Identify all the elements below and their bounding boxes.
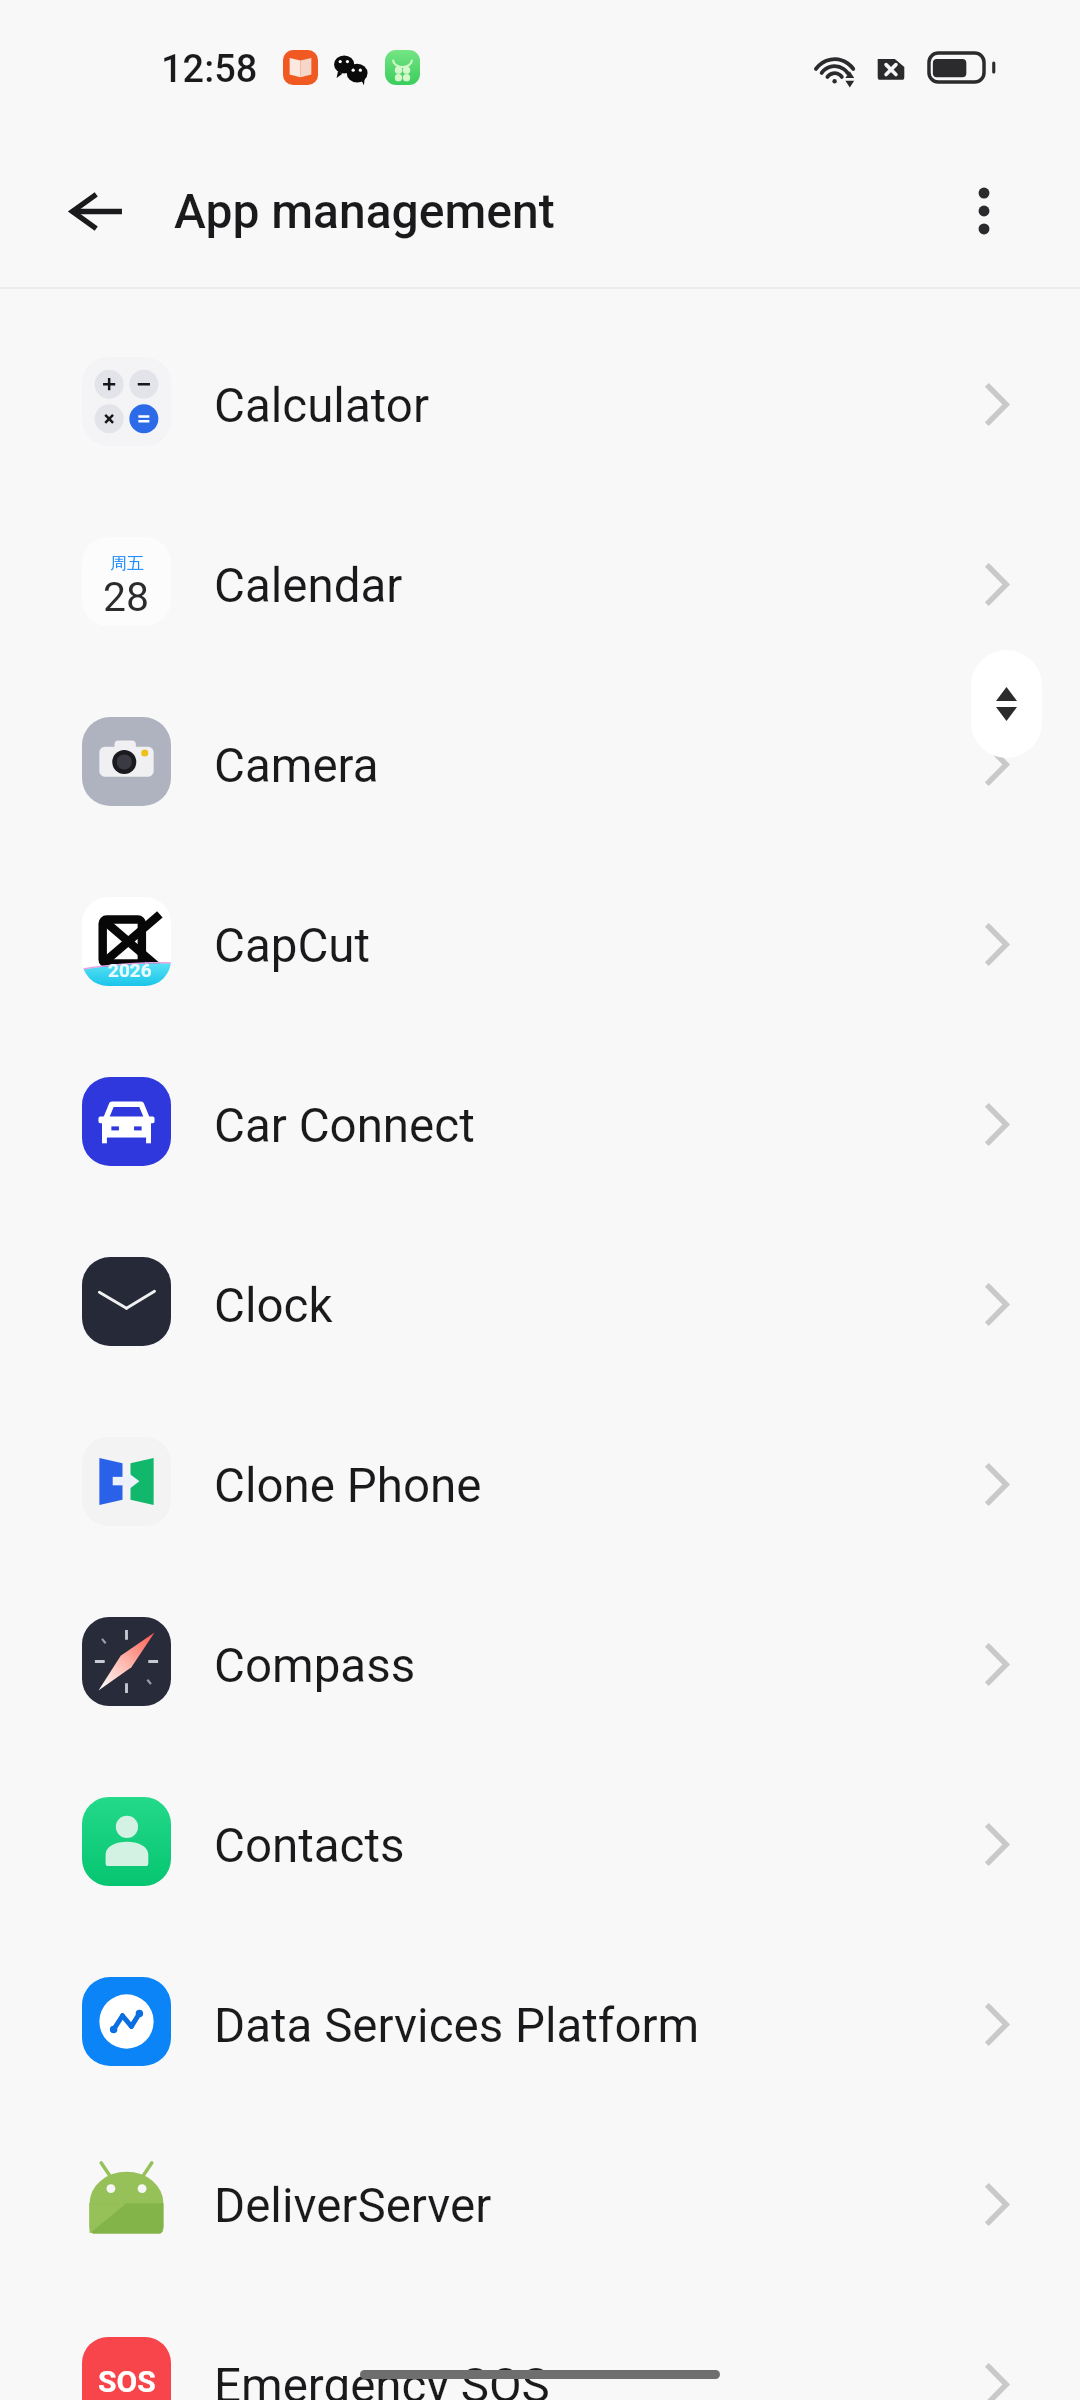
button[interactable]: SOS xyxy=(0,2292,1080,2400)
button[interactable]: Calculator xyxy=(0,312,1080,492)
staticText: 28 xyxy=(103,573,150,621)
button[interactable]: Data Services Platform xyxy=(0,1932,1080,2112)
button[interactable]: More options xyxy=(936,163,1032,259)
staticText: Calendar xyxy=(214,558,403,614)
button[interactable]: 周五 xyxy=(0,492,1080,672)
button[interactable]: Car Connect xyxy=(0,1032,1080,1212)
button[interactable]: Back xyxy=(48,163,144,259)
staticText: Car Connect xyxy=(214,1098,475,1154)
button[interactable]: Clone Phone xyxy=(0,1392,1080,1572)
button[interactable]: Camera xyxy=(0,672,1080,852)
staticText: Camera xyxy=(214,738,379,794)
staticText: 12:58 xyxy=(161,47,258,92)
button[interactable]: Contacts xyxy=(0,1752,1080,1932)
button[interactable]: Clock xyxy=(0,1212,1080,1392)
button[interactable]: Compass xyxy=(0,1572,1080,1752)
staticText: Calculator xyxy=(214,378,430,434)
staticText: CapCut xyxy=(214,918,371,974)
staticText: App management xyxy=(174,183,555,239)
staticText: Emergency SOS xyxy=(214,2358,550,2400)
staticText: 周五 xyxy=(110,553,144,574)
staticText: Contacts xyxy=(214,1818,405,1874)
staticText: Clock xyxy=(214,1278,333,1334)
staticText: Data Services Platform xyxy=(214,1998,700,2054)
button[interactable]: 2026 xyxy=(0,852,1080,1032)
staticText: 2026 xyxy=(108,959,152,981)
staticText: DeliverServer xyxy=(214,2178,492,2234)
button[interactable]: DeliverServer xyxy=(0,2112,1080,2292)
staticText: Clone Phone xyxy=(214,1458,482,1514)
staticText: Compass xyxy=(214,1638,416,1694)
staticText: SOS xyxy=(98,2364,156,2399)
button[interactable]: Scroll xyxy=(971,650,1042,758)
